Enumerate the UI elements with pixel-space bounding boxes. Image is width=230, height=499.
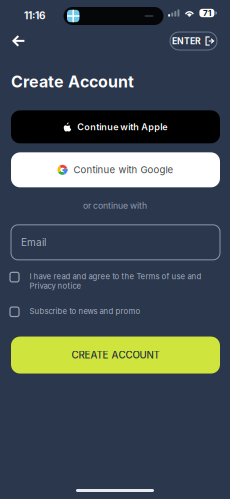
button[interactable]: Subscribe to news and promo: [0, 307, 230, 317]
button[interactable]: Back: [11, 30, 35, 52]
staticText: CREATE ACCOUNT: [71, 349, 159, 361]
staticText: or continue with: [83, 200, 147, 211]
button[interactable]: Continue with Google: [11, 152, 220, 187]
button[interactable]: Continue with Apple: [11, 110, 220, 143]
staticText: Continue with Apple: [77, 121, 167, 132]
button[interactable]: ENTER: [170, 32, 217, 50]
staticText: 71: [203, 8, 211, 18]
staticText: Continue with Google: [73, 164, 173, 176]
staticText: ENTER: [172, 36, 201, 46]
staticText: 11:16: [24, 9, 45, 22]
staticText: I have read and agree to the Terms of us…: [29, 272, 201, 290]
staticText: Create Account: [11, 72, 134, 91]
staticText: Email: [21, 236, 46, 248]
button[interactable]: CREATE ACCOUNT: [11, 337, 220, 374]
button[interactable]: I have read and agree to the Terms of us…: [0, 272, 230, 290]
staticText: Subscribe to news and promo: [29, 307, 140, 316]
